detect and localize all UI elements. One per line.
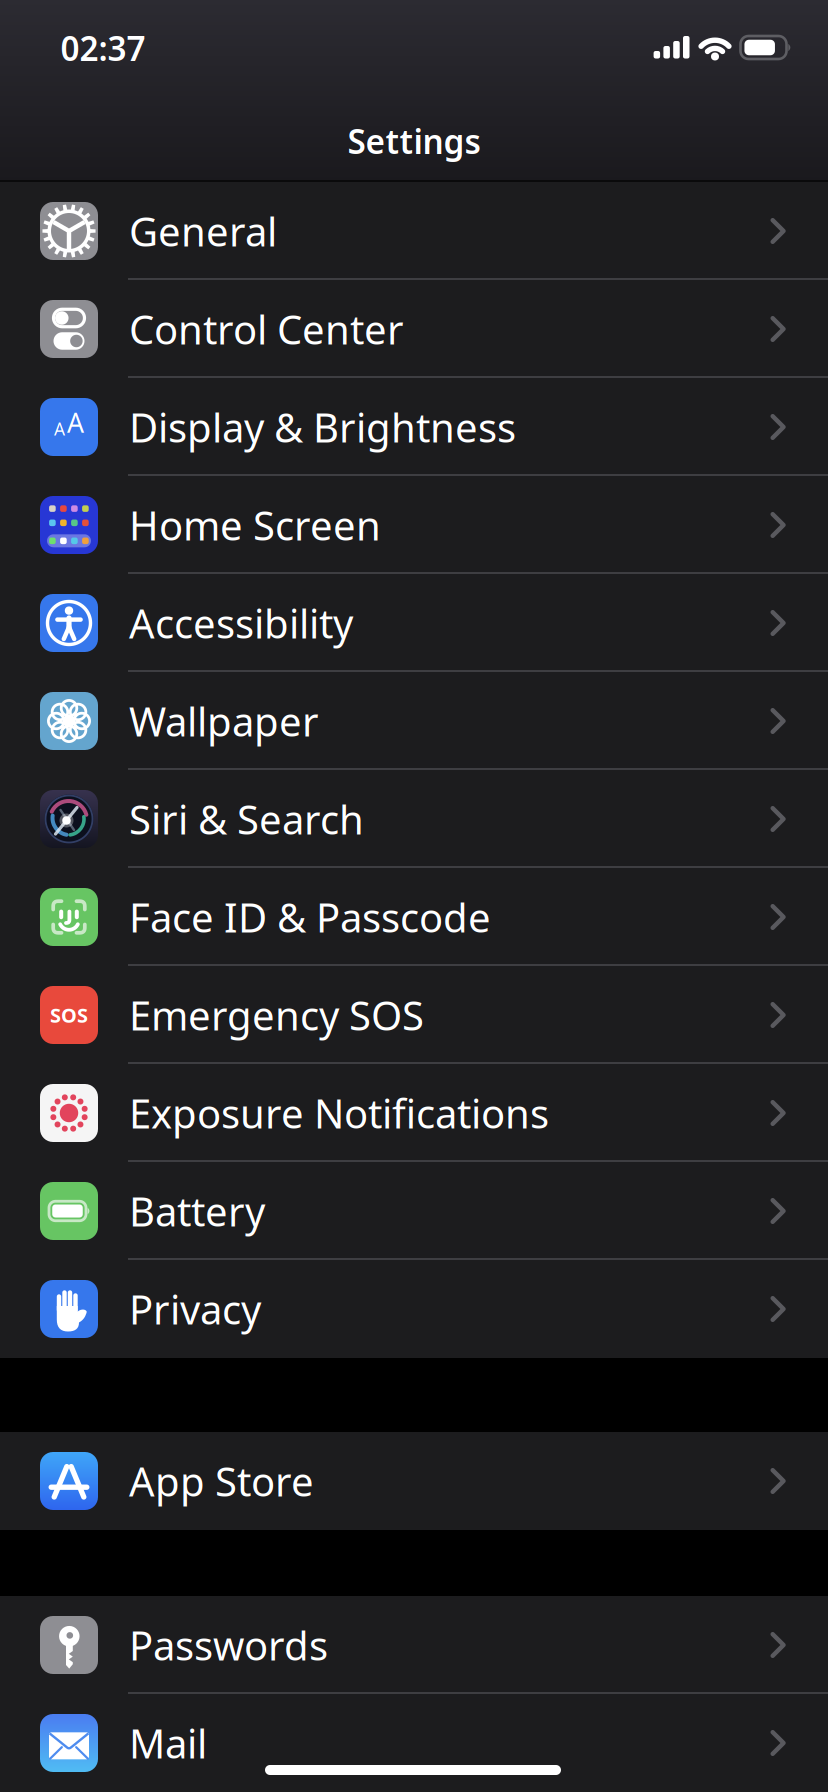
staticText: Passwords [129, 1618, 328, 1671]
staticText: Battery [129, 1184, 265, 1237]
staticText: App Store [129, 1454, 314, 1507]
button[interactable]: Accessibility [0, 574, 828, 672]
staticText: Face ID & Passcode [129, 890, 491, 943]
button[interactable]: SOS [0, 966, 828, 1064]
staticText: A [67, 405, 84, 440]
staticText: 02:37 [60, 26, 145, 70]
button[interactable]: A [0, 378, 828, 476]
staticText: Privacy [129, 1282, 261, 1335]
staticText: General [129, 204, 277, 257]
staticText: Wallpaper [129, 694, 319, 747]
button[interactable]: Passwords [0, 1596, 828, 1694]
button[interactable]: Face ID & Passcode [0, 868, 828, 966]
button[interactable]: Siri & Search [0, 770, 828, 868]
button[interactable]: Battery [0, 1162, 828, 1260]
button[interactable]: Privacy [0, 1260, 828, 1358]
staticText: Accessibility [129, 596, 353, 649]
button[interactable]: App Store [0, 1432, 828, 1530]
button[interactable]: General [0, 182, 828, 280]
staticText: Home Screen [129, 498, 381, 551]
staticText: A [54, 417, 65, 440]
staticText: Mail [129, 1716, 207, 1769]
staticText: Emergency SOS [129, 988, 424, 1041]
staticText: Control Center [129, 302, 404, 355]
staticText: Siri & Search [129, 792, 364, 845]
button[interactable]: Exposure Notifications [0, 1064, 828, 1162]
button[interactable]: Home Screen [0, 476, 828, 574]
button[interactable]: Mail [0, 1694, 828, 1792]
staticText: Settings [347, 119, 480, 163]
button[interactable]: Control Center [0, 280, 828, 378]
button[interactable]: Wallpaper [0, 672, 828, 770]
staticText: SOS [50, 1002, 88, 1028]
staticText: Exposure Notifications [129, 1086, 549, 1139]
staticText: Display & Brightness [129, 400, 516, 453]
